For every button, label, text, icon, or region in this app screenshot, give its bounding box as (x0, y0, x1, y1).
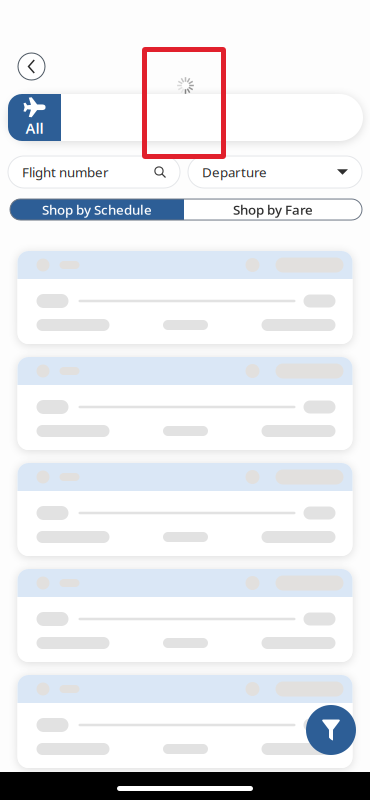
staticText: Flight number (22, 163, 109, 181)
button[interactable]: Flight number (8, 156, 180, 188)
button[interactable]: Shop by Schedule (10, 199, 184, 220)
button[interactable]: Shop by Fare (184, 199, 362, 220)
staticText: Departure (202, 163, 267, 181)
button[interactable]: Filter (306, 705, 356, 755)
button[interactable]: Departure (188, 156, 362, 188)
button[interactable]: Back (18, 53, 45, 80)
button[interactable]: All (8, 94, 61, 141)
staticText: Shop by Fare (233, 201, 313, 218)
staticText: All (25, 118, 43, 138)
staticText: Shop by Schedule (42, 201, 152, 218)
